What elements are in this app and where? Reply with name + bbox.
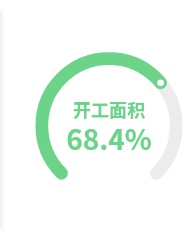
staticText: 68.4% [66,118,152,159]
button[interactable]: 开工面积 68.4% [0,0,193,238]
staticText: 开工面积 [73,96,145,122]
